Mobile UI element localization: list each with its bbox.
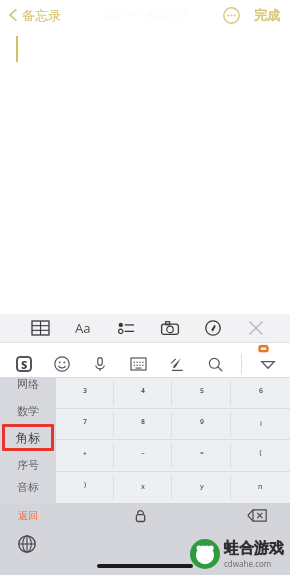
button[interactable]: Delete <box>224 503 290 527</box>
staticText: ⁻ <box>141 448 145 463</box>
button[interactable]: ⁷ <box>56 409 114 439</box>
staticText: 返回 <box>18 509 38 522</box>
button[interactable]: Hide keyboard <box>256 352 280 376</box>
button[interactable]: Markup <box>199 314 227 342</box>
staticText: 角标 <box>16 430 40 445</box>
staticText: Aa <box>75 319 91 337</box>
button[interactable]: ⁿ <box>231 472 290 503</box>
staticText: ʸ <box>200 480 204 495</box>
button[interactable]: Search <box>203 352 227 376</box>
staticText: ⁵ <box>200 386 204 401</box>
staticText: ⁶ <box>259 386 263 401</box>
button[interactable]: 数学 <box>0 397 56 424</box>
button[interactable]: ⁹ <box>172 409 231 439</box>
staticText: 完成 <box>254 7 280 23</box>
button[interactable]: 完成 <box>250 3 284 27</box>
button[interactable]: Handwriting <box>165 352 189 376</box>
staticText: ⁿ <box>258 480 263 495</box>
button[interactable]: Keyboard layout <box>126 352 150 376</box>
button[interactable]: ⁻ <box>114 440 172 471</box>
button[interactable]: ³ <box>56 378 114 408</box>
button[interactable]: Table <box>26 314 54 342</box>
button[interactable]: 序号 <box>0 451 56 478</box>
staticText: 网络 <box>17 377 39 391</box>
button[interactable]: 网络 <box>0 370 56 397</box>
button[interactable]: ˣ <box>114 472 172 503</box>
button[interactable]: Checklist <box>112 314 140 342</box>
staticText: ⁴ <box>141 386 145 401</box>
staticText: S <box>21 357 28 372</box>
staticText: ⁷ <box>83 417 87 432</box>
button[interactable]: Camera <box>156 314 184 342</box>
staticText: ⁸ <box>141 417 145 432</box>
staticText: ⁼ <box>200 448 204 463</box>
button[interactable]: ⁴ <box>114 378 172 408</box>
button[interactable]: ⁶ <box>231 378 290 408</box>
button[interactable]: More options <box>218 2 244 28</box>
button[interactable]: Lock symbols <box>56 503 224 527</box>
button[interactable]: Emoji <box>50 352 74 376</box>
button[interactable]: ⁼ <box>172 440 231 471</box>
button[interactable]: Text format <box>69 314 97 342</box>
staticText: 备忘录 <box>22 7 61 23</box>
staticText: ⁹ <box>200 417 204 432</box>
button[interactable]: Switch language <box>14 531 40 557</box>
staticText: ⁾ <box>84 480 87 495</box>
button[interactable]: ⁺ <box>56 440 114 471</box>
button[interactable]: Voice input <box>88 352 112 376</box>
button[interactable]: ⁾ <box>56 472 114 503</box>
staticText: ³ <box>83 386 87 401</box>
button[interactable]: Close <box>242 314 270 342</box>
button[interactable]: ʸ <box>172 472 231 503</box>
button[interactable]: Sogou input <box>12 352 36 376</box>
button[interactable]: 音标 <box>0 478 56 496</box>
staticText: ˣ <box>141 480 145 495</box>
staticText: 序号 <box>17 458 39 472</box>
button[interactable]: 备忘录 <box>0 3 69 27</box>
button[interactable]: ⁸ <box>114 409 172 439</box>
staticText: ⁺ <box>83 448 87 463</box>
button[interactable]: ⁵ <box>172 378 231 408</box>
button[interactable]: ⁱ <box>231 409 290 439</box>
button[interactable]: 返回 <box>0 503 56 527</box>
staticText: 数学 <box>17 404 39 418</box>
staticText: cdwahe.com <box>224 558 272 569</box>
staticText: ⁱ <box>260 417 262 432</box>
staticText: ⁽ <box>259 448 262 463</box>
staticText: 音标 <box>17 480 39 494</box>
staticText: 蛙合游戏 <box>224 539 284 558</box>
button[interactable]: ⁽ <box>231 440 290 471</box>
button[interactable]: 角标 <box>0 424 56 451</box>
